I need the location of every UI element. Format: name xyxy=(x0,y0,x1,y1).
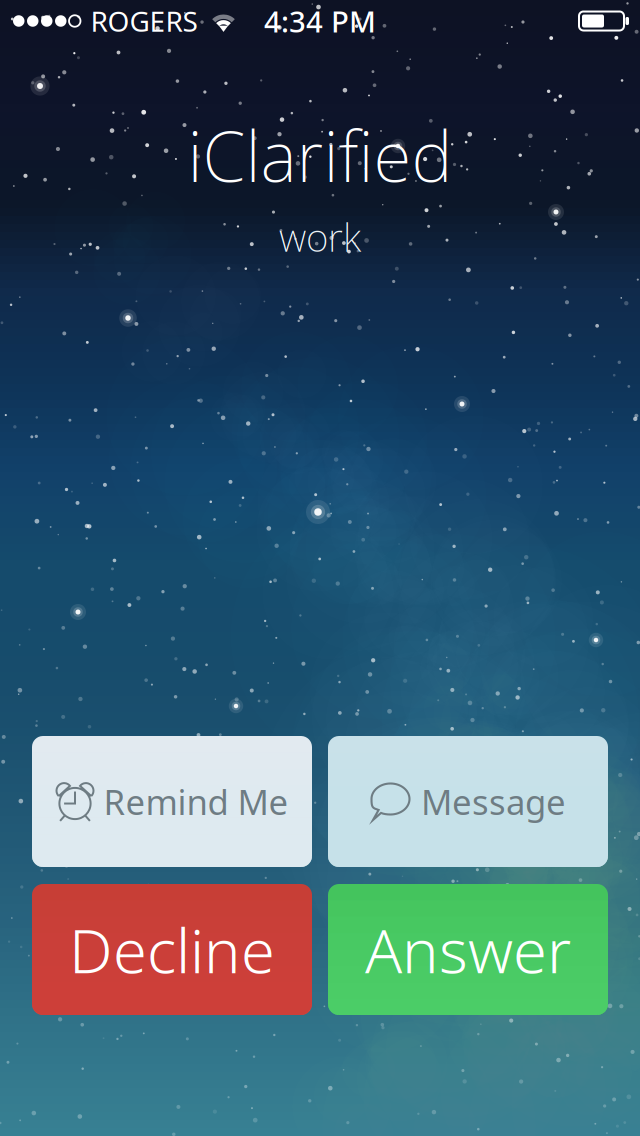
button[interactable]: Answer xyxy=(328,884,608,1015)
button[interactable]: Decline xyxy=(32,884,312,1015)
staticText: Remind Me xyxy=(103,778,288,824)
staticText: iClarified xyxy=(187,109,452,201)
button[interactable]: Message xyxy=(328,736,608,867)
button[interactable]: Remind Me xyxy=(32,736,312,867)
staticText: 4:34 PM xyxy=(264,1,376,40)
staticText: work xyxy=(279,211,361,262)
staticText: Decline xyxy=(69,909,275,990)
staticText: Message xyxy=(421,778,566,824)
staticText: Answer xyxy=(365,909,571,990)
staticText: ROGERS xyxy=(90,2,197,40)
